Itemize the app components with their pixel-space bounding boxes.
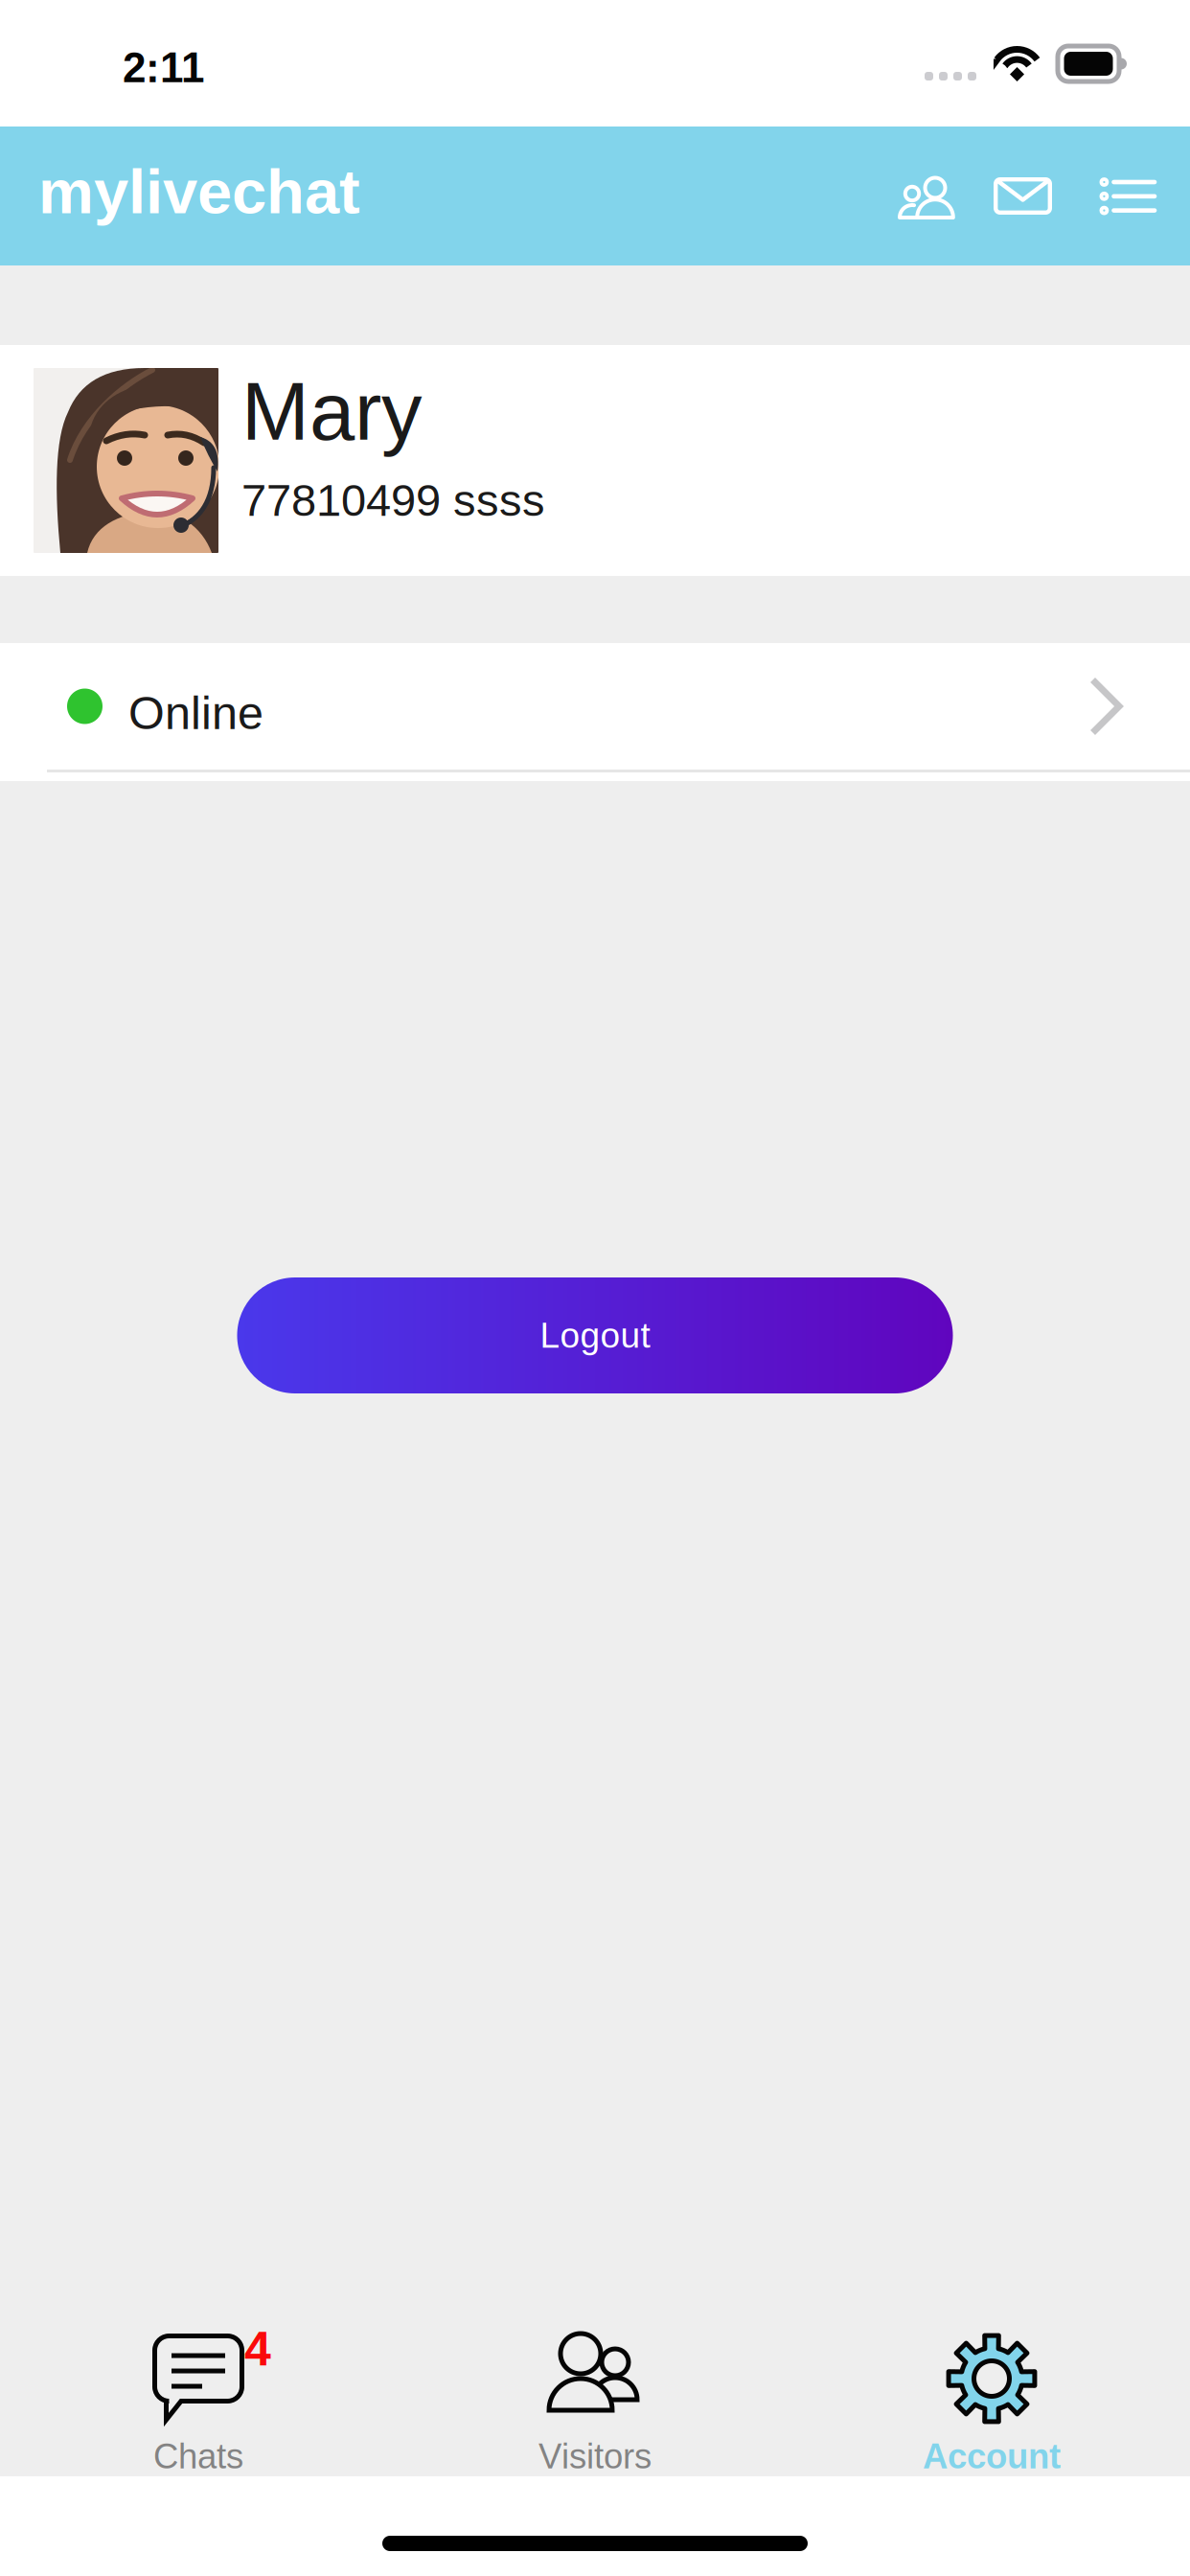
button[interactable]: Visitors [397,2294,793,2476]
staticText: Visitors [538,2437,652,2476]
button[interactable]: Messages [973,177,1073,215]
staticText: Online [128,687,263,739]
staticText: Logout [540,1316,650,1355]
staticText: 77810499 ssss [241,475,545,525]
button[interactable]: Logout [237,1277,953,1393]
button[interactable]: Account [793,2294,1190,2476]
button[interactable]: Mary [0,345,1190,576]
staticText: Chats [153,2437,243,2476]
staticText: 4 [244,2322,286,2376]
staticText: 2:11 [123,44,204,91]
button[interactable]: Visitors [873,172,973,219]
staticText: Mary [241,366,423,457]
button[interactable]: Menu [1073,177,1155,215]
button[interactable]: 4 [0,2294,397,2476]
button[interactable]: Online [0,643,1190,781]
staticText: mylivechat [38,157,360,226]
staticText: Account [923,2437,1061,2476]
